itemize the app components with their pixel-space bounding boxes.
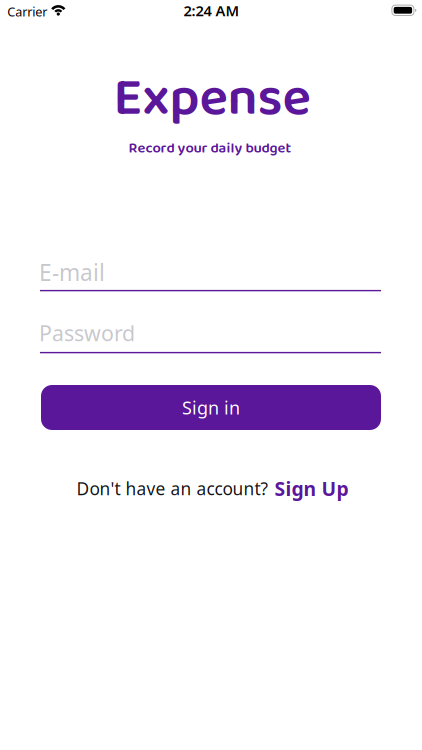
staticText: Sign in	[182, 395, 240, 420]
button[interactable]: Sign Up	[274, 475, 348, 502]
staticText: E-mail	[39, 257, 105, 288]
staticText: Record your daily budget	[128, 137, 291, 160]
staticText: Don't have an account?	[76, 477, 268, 500]
staticText: Password	[39, 318, 135, 347]
staticText: 2:24 AM	[183, 1, 239, 21]
staticText: Expense	[113, 56, 310, 142]
staticText: Sign Up	[274, 475, 348, 502]
button[interactable]: Sign in	[41, 385, 381, 430]
staticText: Carrier	[7, 3, 47, 20]
